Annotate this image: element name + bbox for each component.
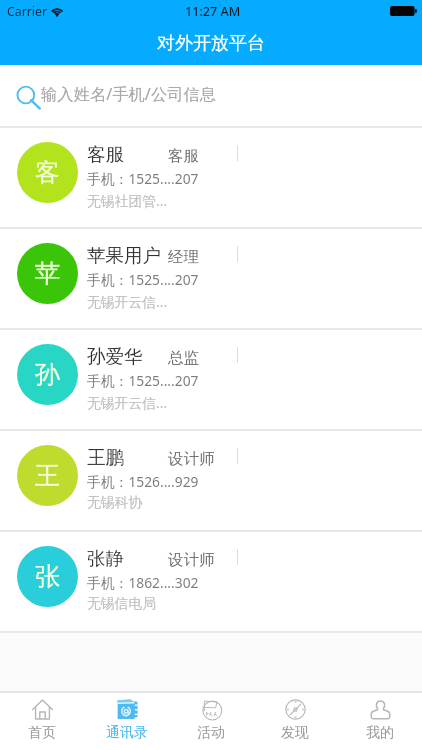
staticText: 手机：1862....302 — [87, 573, 199, 592]
staticText: 手机：1525....207 — [87, 169, 199, 188]
button[interactable]: 活动 — [169, 693, 253, 750]
button[interactable]: 对外开放平台 — [0, 21, 422, 65]
staticText: 首页 — [28, 724, 56, 742]
staticText: 苹 — [35, 258, 60, 289]
button[interactable]: 我的 — [338, 693, 422, 750]
staticText: 无锡社团管... — [87, 191, 168, 210]
staticText: 王鹏 — [87, 446, 124, 469]
staticText: 设计师 — [168, 449, 215, 469]
staticText: 无锡信电局 — [87, 595, 156, 612]
staticText: 经理 — [168, 247, 199, 267]
staticText: 设计师 — [168, 550, 215, 570]
staticText: 活动 — [197, 724, 225, 742]
button[interactable]: 王 — [0, 431, 422, 530]
button[interactable]: 通讯录 — [85, 693, 169, 750]
staticText: 无锡开云信... — [87, 292, 168, 311]
other: Wi-Fi signal — [50, 5, 64, 16]
staticText: 输入姓名/手机/公司信息 — [41, 83, 217, 105]
button[interactable]: 孙 — [0, 330, 422, 429]
staticText: 我的 — [366, 724, 394, 742]
staticText: 无锡开云信... — [87, 393, 168, 412]
staticText: 孙 — [35, 359, 60, 390]
staticText: 手机：1525....207 — [87, 371, 199, 390]
staticText: 发现 — [281, 724, 309, 742]
staticText: 客 — [35, 157, 60, 188]
button[interactable]: 发现 — [253, 693, 337, 750]
staticText: 张 — [35, 561, 60, 592]
button[interactable]: 苹 — [0, 229, 422, 328]
other: Search — [16, 86, 42, 112]
staticText: 客服 — [87, 143, 124, 166]
button[interactable]: 张 — [0, 532, 422, 631]
staticText: 苹果用户 — [87, 244, 161, 267]
staticText: 手机：1525....207 — [87, 270, 199, 289]
staticText: 王 — [35, 460, 60, 491]
staticText: 总监 — [168, 348, 199, 368]
staticText: 孙爱华 — [87, 345, 143, 368]
staticText: 对外开放平台 — [157, 32, 265, 55]
staticText: 手机：1526....929 — [87, 472, 199, 491]
staticText: Carrier — [7, 3, 48, 20]
button[interactable]: 首页 — [0, 693, 84, 750]
button[interactable]: 客 — [0, 128, 422, 227]
staticText: 11:27 AM — [185, 3, 241, 20]
staticText: 无锡科协 — [87, 494, 143, 511]
staticText: 张静 — [87, 547, 124, 570]
staticText: 通讯录 — [106, 724, 148, 742]
staticText: 客服 — [168, 146, 199, 166]
button[interactable]: Search — [0, 65, 422, 126]
